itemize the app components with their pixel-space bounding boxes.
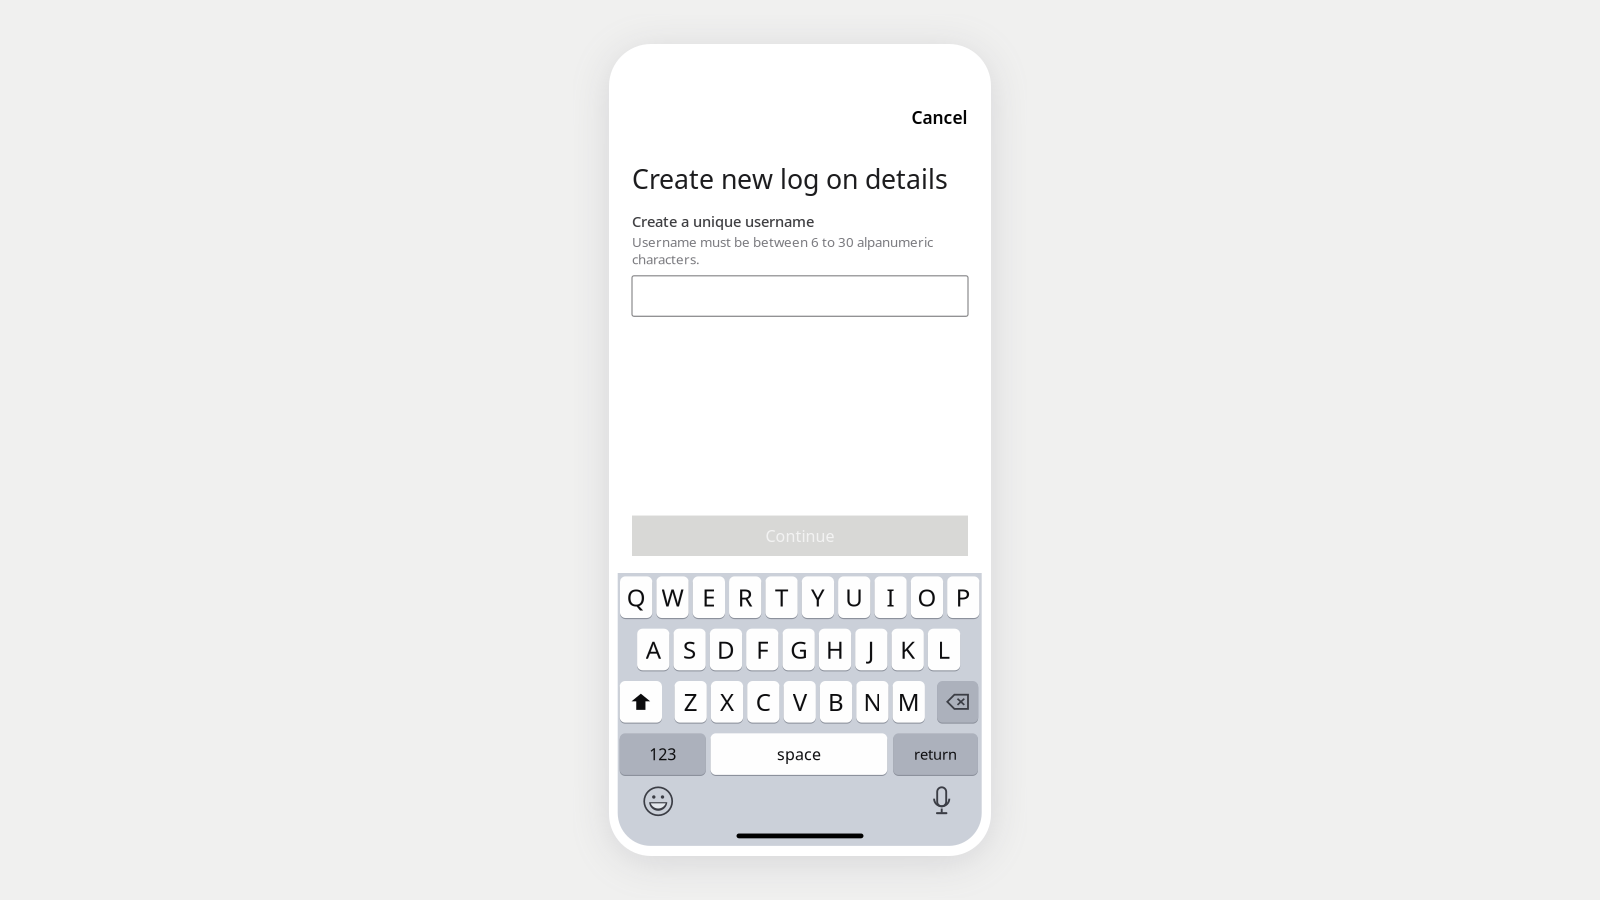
staticText: U — [845, 581, 863, 613]
staticText: 123 — [649, 743, 676, 765]
staticText: H — [826, 634, 844, 665]
button[interactable]: Username — [632, 276, 968, 316]
staticText: R — [738, 581, 753, 613]
button[interactable]: Z — [674, 681, 707, 723]
button[interactable]: A — [637, 629, 669, 670]
button[interactable]: U — [838, 576, 870, 618]
staticText: I — [887, 581, 895, 613]
button[interactable]: D — [710, 629, 742, 670]
staticText: C — [756, 686, 771, 718]
button[interactable]: P — [947, 576, 979, 618]
staticText: B — [828, 686, 844, 718]
button[interactable]: V — [783, 681, 816, 723]
button[interactable]: C — [747, 681, 779, 723]
button[interactable]: T — [765, 576, 798, 618]
staticText: Username must be between 6 to 30 alpanum… — [632, 233, 933, 268]
button[interactable]: E — [693, 576, 725, 618]
button[interactable]: W — [656, 576, 689, 618]
button[interactable]: G — [782, 629, 815, 670]
button[interactable]: return — [893, 733, 978, 775]
button[interactable]: Emoji keyboard — [638, 784, 678, 818]
staticText: D — [717, 634, 735, 665]
button[interactable]: O — [911, 576, 943, 618]
staticText: M — [898, 686, 920, 718]
button[interactable]: B — [820, 681, 852, 723]
button[interactable]: Delete — [937, 681, 978, 723]
staticText: Z — [684, 686, 698, 718]
staticText: P — [956, 581, 971, 613]
button[interactable]: M — [893, 681, 925, 723]
button[interactable]: H — [819, 629, 851, 670]
button[interactable]: R — [729, 576, 761, 618]
button[interactable]: N — [856, 681, 888, 723]
button[interactable]: F — [746, 629, 778, 670]
staticText: return — [914, 744, 957, 764]
button[interactable]: J — [855, 629, 887, 670]
staticText: W — [661, 581, 683, 613]
button[interactable]: Shift — [620, 681, 662, 723]
staticText: Create a unique username — [632, 211, 814, 231]
button[interactable]: Y — [802, 576, 834, 618]
button[interactable]: I — [874, 576, 907, 618]
staticText: V — [793, 686, 807, 718]
staticText: N — [863, 686, 881, 718]
staticText: X — [720, 686, 734, 718]
staticText: S — [683, 634, 696, 665]
staticText: E — [702, 581, 715, 613]
staticText: K — [900, 634, 915, 665]
button[interactable]: L — [928, 629, 960, 670]
staticText: Continue — [765, 525, 834, 546]
button[interactable]: space — [710, 733, 887, 775]
button[interactable]: Cancel — [879, 102, 967, 132]
staticText: O — [917, 581, 936, 613]
staticText: L — [938, 634, 951, 665]
staticText: J — [868, 634, 875, 665]
staticText: A — [646, 634, 661, 665]
staticText: G — [790, 634, 807, 665]
button[interactable]: Q — [620, 576, 652, 618]
button[interactable]: S — [673, 629, 706, 670]
button[interactable]: K — [891, 629, 924, 670]
button[interactable]: X — [711, 681, 743, 723]
button[interactable]: Dictation — [922, 780, 962, 814]
staticText: Create new log on details — [632, 161, 948, 196]
button[interactable]: Continue — [632, 515, 968, 556]
staticText: F — [756, 634, 768, 665]
staticText: space — [777, 743, 821, 765]
staticText: Cancel — [911, 106, 967, 129]
staticText: Y — [811, 581, 825, 613]
staticText: Q — [627, 581, 646, 613]
button[interactable]: 123 — [620, 733, 706, 775]
staticText: T — [775, 581, 788, 613]
